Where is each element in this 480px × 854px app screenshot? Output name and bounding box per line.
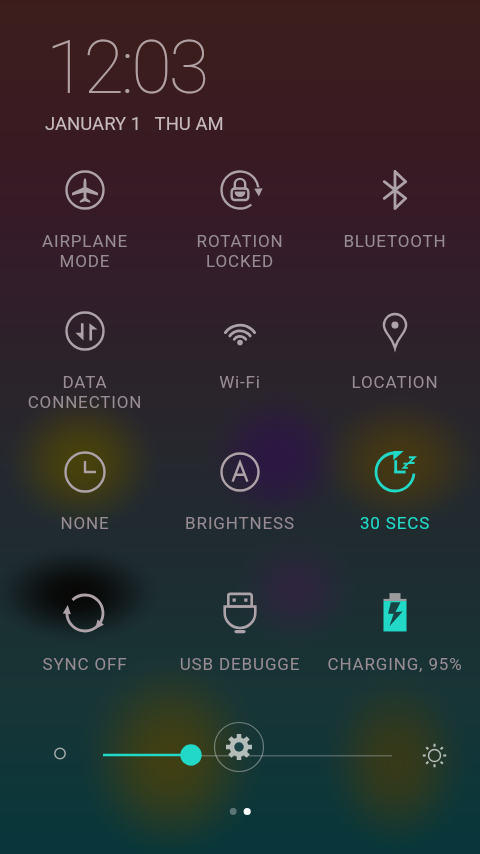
staticText: BLUETOOTH — [318, 231, 472, 251]
button[interactable]: Screen timeout — [318, 438, 472, 568]
button[interactable]: Brightness — [163, 438, 317, 568]
staticText: USB DEBUGGE — [163, 654, 317, 674]
button[interactable]: Bluetooth — [318, 156, 472, 286]
staticText: BRIGHTNESS — [163, 513, 317, 533]
staticText: NONE — [8, 513, 162, 533]
staticText: AIRPLANE MODE — [8, 231, 162, 271]
staticText: ROTATION LOCKED — [163, 231, 317, 271]
button[interactable]: Sync off — [8, 579, 162, 709]
button[interactable]: Rotation locked — [163, 156, 317, 286]
staticText: 30 SECS — [318, 513, 472, 533]
button[interactable]: Airplane mode — [8, 156, 162, 286]
button[interactable]: Do not disturb — [8, 438, 162, 568]
button[interactable]: Location — [318, 297, 472, 427]
staticText: Wi-Fi — [163, 372, 317, 392]
button[interactable]: Charging 95 percent — [318, 579, 472, 709]
staticText: JANUARY 1 THU AM — [45, 113, 224, 135]
staticText: 12:03 — [46, 24, 207, 111]
staticText: CHARGING, 95% — [318, 654, 472, 674]
staticText: SYNC OFF — [8, 654, 162, 674]
button[interactable]: Wi-Fi — [163, 297, 317, 427]
staticText: DATA CONNECTION — [8, 372, 162, 412]
button[interactable]: Data connection — [8, 297, 162, 427]
staticText: LOCATION — [318, 372, 472, 392]
button[interactable]: Brightness slider — [0, 720, 480, 790]
button[interactable]: USB debugging — [163, 579, 317, 709]
